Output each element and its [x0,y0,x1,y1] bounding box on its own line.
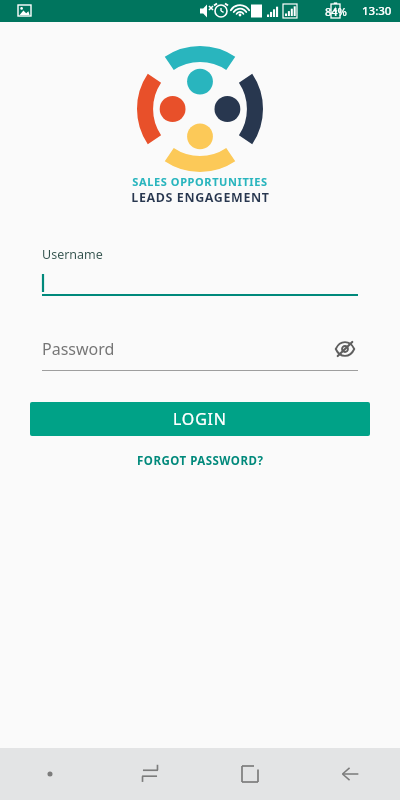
button[interactable]: FORGOT PASSWORD? [127,449,274,473]
button[interactable]: Home [200,748,300,800]
button[interactable]: Password [42,336,358,371]
button[interactable]: Assistant [0,748,100,800]
staticText: SALES OPPORTUNITIES [132,174,268,189]
staticText: Password [42,338,332,360]
staticText: LEADS ENGAGEMENT [131,189,270,206]
staticText: FORGOT PASSWORD? [137,453,264,469]
button[interactable]: Username [42,246,358,296]
staticText: 13:30 [362,3,392,19]
button[interactable]: Show password [332,336,358,362]
button[interactable]: LOGIN [30,402,370,436]
button[interactable]: Recent apps [100,748,200,800]
staticText: Username [42,246,103,263]
button[interactable]: Back [300,748,400,800]
staticText: 84% [325,4,347,19]
staticText: LOGIN [173,408,227,430]
